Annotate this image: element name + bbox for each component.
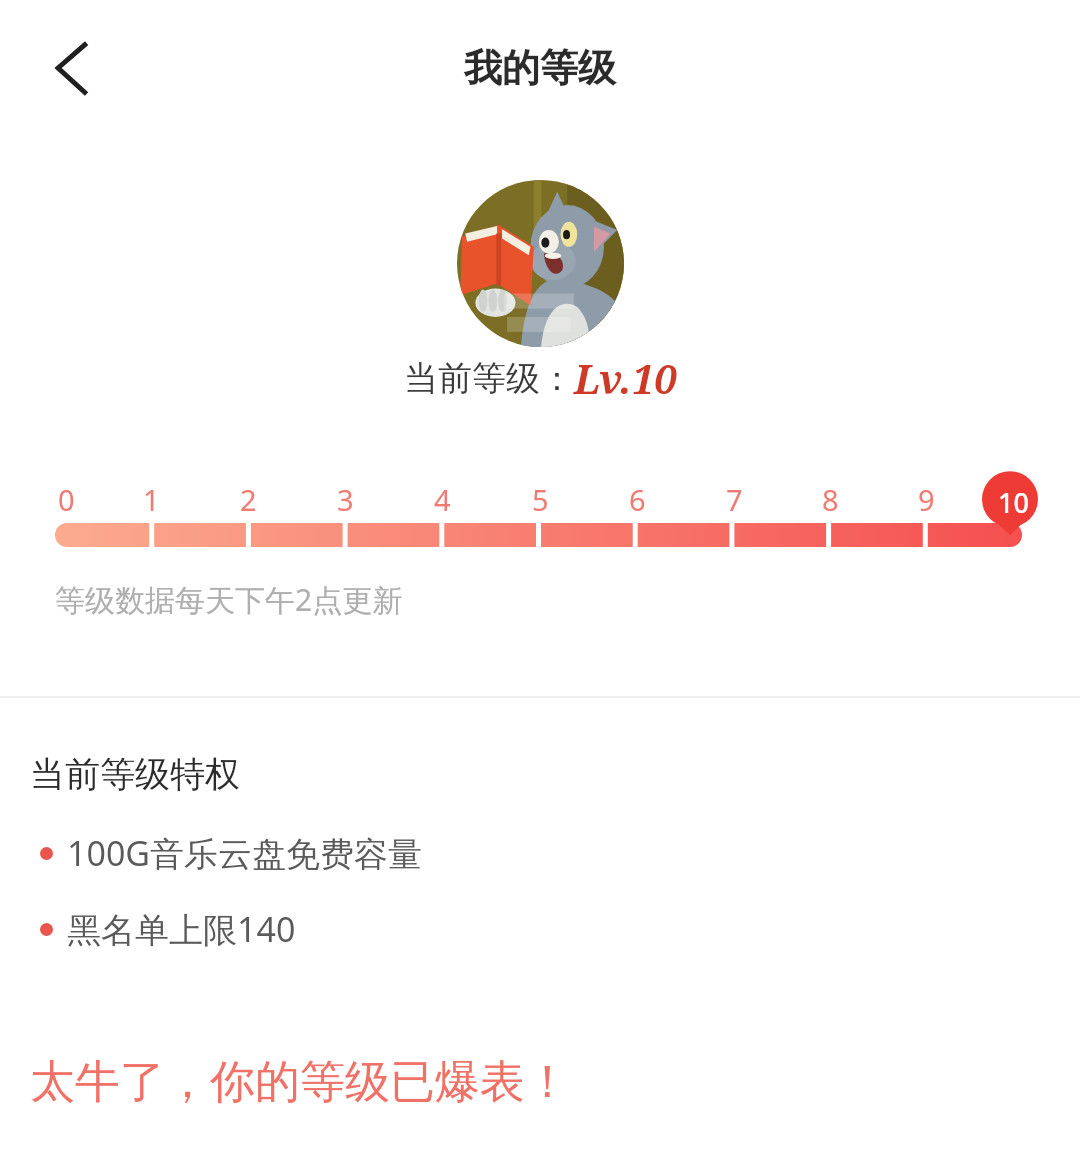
staticText: 5 [532, 480, 549, 519]
button[interactable]: 100G音乐云盘免费容量 [0, 824, 1080, 882]
staticText: 7 [726, 480, 743, 519]
staticText: Lv.10 [574, 351, 677, 405]
staticText: 8 [822, 480, 839, 519]
staticText: 0 [58, 480, 75, 519]
staticText: 3 [337, 480, 354, 519]
button[interactable]: Back [22, 18, 122, 118]
staticText: 4 [434, 480, 451, 519]
staticText: 等级数据每天下午2点更新 [55, 579, 403, 620]
staticText: 100G音乐云盘免费容量 [67, 830, 423, 876]
staticText: 当前等级： [404, 357, 574, 400]
button[interactable]: Avatar [457, 180, 624, 347]
staticText: 当前等级特权 [30, 752, 240, 796]
staticText: 太牛了，你的等级已爆表！ [30, 1054, 570, 1111]
staticText: 9 [918, 480, 935, 519]
staticText: 黑名单上限140 [67, 906, 296, 952]
staticText: 1 [143, 480, 160, 519]
staticText: 我的等级 [464, 44, 616, 92]
staticText: 2 [240, 480, 257, 519]
staticText: 10 [998, 484, 1029, 521]
staticText: 6 [629, 480, 646, 519]
button[interactable]: 黑名单上限140 [0, 900, 1080, 958]
